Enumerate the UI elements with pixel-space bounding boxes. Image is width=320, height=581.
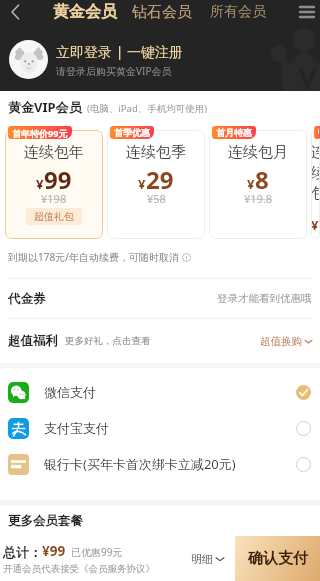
- staticText: 首年特价99元: [12, 127, 68, 139]
- button[interactable]: 立即登录 | 一键注册: [9, 40, 320, 79]
- staticText: ¥58: [147, 191, 166, 206]
- staticText: ¥12: [311, 232, 320, 234]
- button[interactable]: 钻石会员: [132, 3, 192, 22]
- button[interactable]: 连续包季: [107, 130, 205, 239]
- button[interactable]: Back: [0, 0, 30, 24]
- staticText: 8: [255, 163, 269, 196]
- button[interactable]: 超值福利: [0, 319, 320, 363]
- staticText: 99: [44, 163, 72, 196]
- staticText: 黄金VIP会员: [8, 98, 82, 116]
- staticText: ¥198: [41, 191, 67, 206]
- staticText: 超值礼包: [34, 210, 74, 223]
- staticText: 更多好礼，点击查看: [65, 335, 151, 347]
- staticText: 6: [319, 204, 320, 237]
- staticText: 已优惠99元: [71, 545, 123, 559]
- staticText: 总计：: [3, 544, 42, 560]
- staticText: 微信支付: [44, 384, 96, 400]
- staticText: 连续包季: [126, 143, 186, 162]
- button[interactable]: 银行卡(买年卡首次绑卡立减20元): [0, 446, 320, 482]
- button[interactable]: 连续包月: [209, 130, 307, 239]
- staticText: 钻石会员: [132, 3, 192, 22]
- staticText: 更多会员套餐: [8, 513, 83, 529]
- staticText: ¥: [36, 175, 44, 193]
- staticText: ¥19.8: [244, 191, 273, 206]
- staticText: 连续包月: [228, 143, 288, 162]
- button[interactable]: 明细: [186, 552, 229, 566]
- staticText: 首季优惠: [114, 127, 150, 138]
- button[interactable]: 连续包: [311, 130, 320, 239]
- staticText: ¥: [138, 175, 146, 193]
- staticText: 确认支付: [248, 549, 308, 568]
- button[interactable]: 更多会员套餐: [0, 506, 320, 536]
- staticText: 连续包年: [24, 143, 84, 162]
- staticText: 立即登录 | 一键注册: [56, 42, 183, 61]
- button[interactable]: 代金券: [0, 279, 320, 318]
- staticText: 明细: [191, 552, 213, 566]
- staticText: ¥: [311, 216, 319, 234]
- staticText: 特惠: [318, 126, 319, 139]
- button[interactable]: 所有会员: [210, 3, 266, 21]
- staticText: 支付宝支付: [44, 420, 109, 436]
- staticText: 到期以178元/年自动续费，可随时取消: [8, 250, 179, 264]
- staticText: 所有会员: [210, 3, 266, 21]
- button[interactable]: 支付宝支付: [0, 410, 320, 446]
- staticText: 黄金会员: [53, 2, 117, 22]
- staticText: 29: [146, 163, 174, 196]
- button[interactable]: 连续包年: [5, 130, 103, 239]
- button[interactable]: 黄金会员: [53, 2, 117, 22]
- staticText: 超值福利: [8, 333, 58, 349]
- staticText: 代金券: [8, 291, 46, 307]
- staticText: 超值换购: [260, 335, 302, 348]
- button[interactable]: Menu: [294, 0, 320, 24]
- staticText: (电脑、iPad、手机均可使用): [87, 102, 208, 115]
- staticText: 连续包: [311, 143, 320, 203]
- staticText: 登录才能看到优惠哦: [217, 292, 312, 305]
- staticText: 首月特惠: [216, 127, 252, 138]
- staticText: 银行卡(买年卡首次绑卡立减20元): [44, 455, 236, 473]
- staticText: 开通会员代表接受《会员服务协议》: [3, 563, 155, 575]
- button[interactable]: 确认支付: [235, 536, 320, 581]
- button[interactable]: 微信支付: [0, 374, 320, 410]
- staticText: 请登录后购买黄金VIP会员: [56, 64, 172, 78]
- staticText: ¥: [247, 175, 255, 193]
- staticText: ¥99: [42, 542, 66, 560]
